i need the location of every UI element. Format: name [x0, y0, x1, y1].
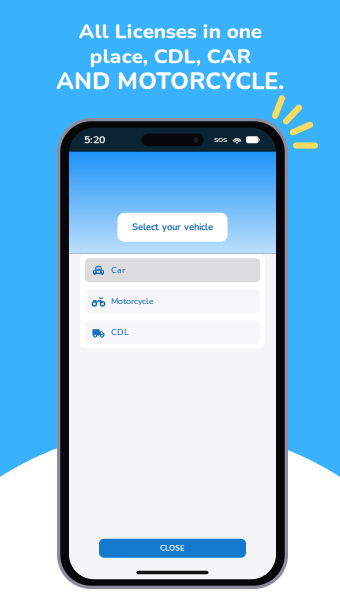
button[interactable]: Motorcycle: [85, 289, 260, 313]
staticText: CLOSE: [160, 543, 185, 553]
staticText: 5:20: [84, 132, 105, 147]
staticText: All Licenses in one: [78, 17, 261, 46]
staticText: Car: [111, 264, 125, 276]
staticText: Select your vehicle: [132, 221, 213, 234]
button[interactable]: Car: [85, 258, 260, 282]
staticText: place, CDL, CAR: [89, 42, 250, 71]
staticText: SOS: [214, 135, 227, 144]
button[interactable]: CDL: [85, 320, 260, 344]
staticText: AND MOTORCYCLE.: [56, 65, 284, 97]
button[interactable]: Select your vehicle: [117, 213, 227, 242]
button[interactable]: CLOSE: [99, 539, 246, 558]
staticText: Motorcycle: [111, 295, 154, 307]
staticText: CDL: [111, 326, 129, 338]
